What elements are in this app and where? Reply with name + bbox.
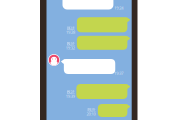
staticText: 20:10 bbox=[86, 111, 95, 116]
staticText: 19:24 bbox=[114, 5, 123, 10]
button[interactable] bbox=[61, 59, 115, 74]
button[interactable] bbox=[76, 84, 130, 99]
staticText: 19:32 bbox=[66, 45, 75, 50]
staticText: 既読 bbox=[87, 107, 95, 112]
button[interactable] bbox=[62, 0, 113, 9]
button[interactable] bbox=[77, 17, 130, 32]
staticText: 19:28 bbox=[66, 30, 75, 35]
staticText: 既読 bbox=[67, 90, 75, 95]
button[interactable] bbox=[98, 104, 130, 117]
staticText: 19:37 bbox=[114, 70, 123, 76]
staticText: 既読 bbox=[67, 26, 75, 31]
staticText: 19:39 bbox=[66, 93, 75, 99]
staticText: 既読 bbox=[67, 41, 75, 46]
button[interactable] bbox=[77, 36, 130, 50]
